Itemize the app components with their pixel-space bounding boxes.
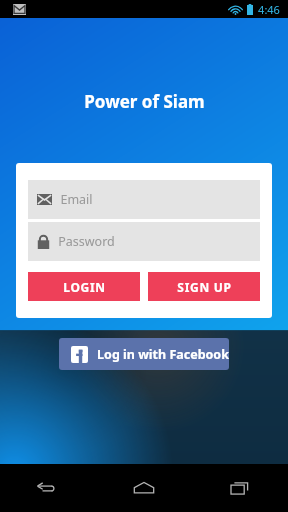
staticText: 4:46: [258, 2, 280, 17]
staticText: LOGIN: [63, 279, 106, 295]
button[interactable]: Recent apps: [192, 464, 288, 512]
staticText: Password: [58, 233, 115, 250]
button[interactable]: SIGN UP: [148, 272, 260, 301]
button[interactable]: LOGIN: [28, 272, 140, 301]
button[interactable]: Password: [28, 222, 260, 261]
button[interactable]: Home: [96, 464, 192, 512]
staticText: Log in with Facebook: [97, 346, 229, 363]
button[interactable]: Email: [28, 180, 260, 219]
staticText: Power of Siam: [84, 90, 205, 113]
button[interactable]: Back: [0, 464, 96, 512]
staticText: Email: [60, 191, 93, 208]
button[interactable]: Log in with Facebook: [59, 338, 229, 370]
staticText: SIGN UP: [177, 279, 232, 295]
